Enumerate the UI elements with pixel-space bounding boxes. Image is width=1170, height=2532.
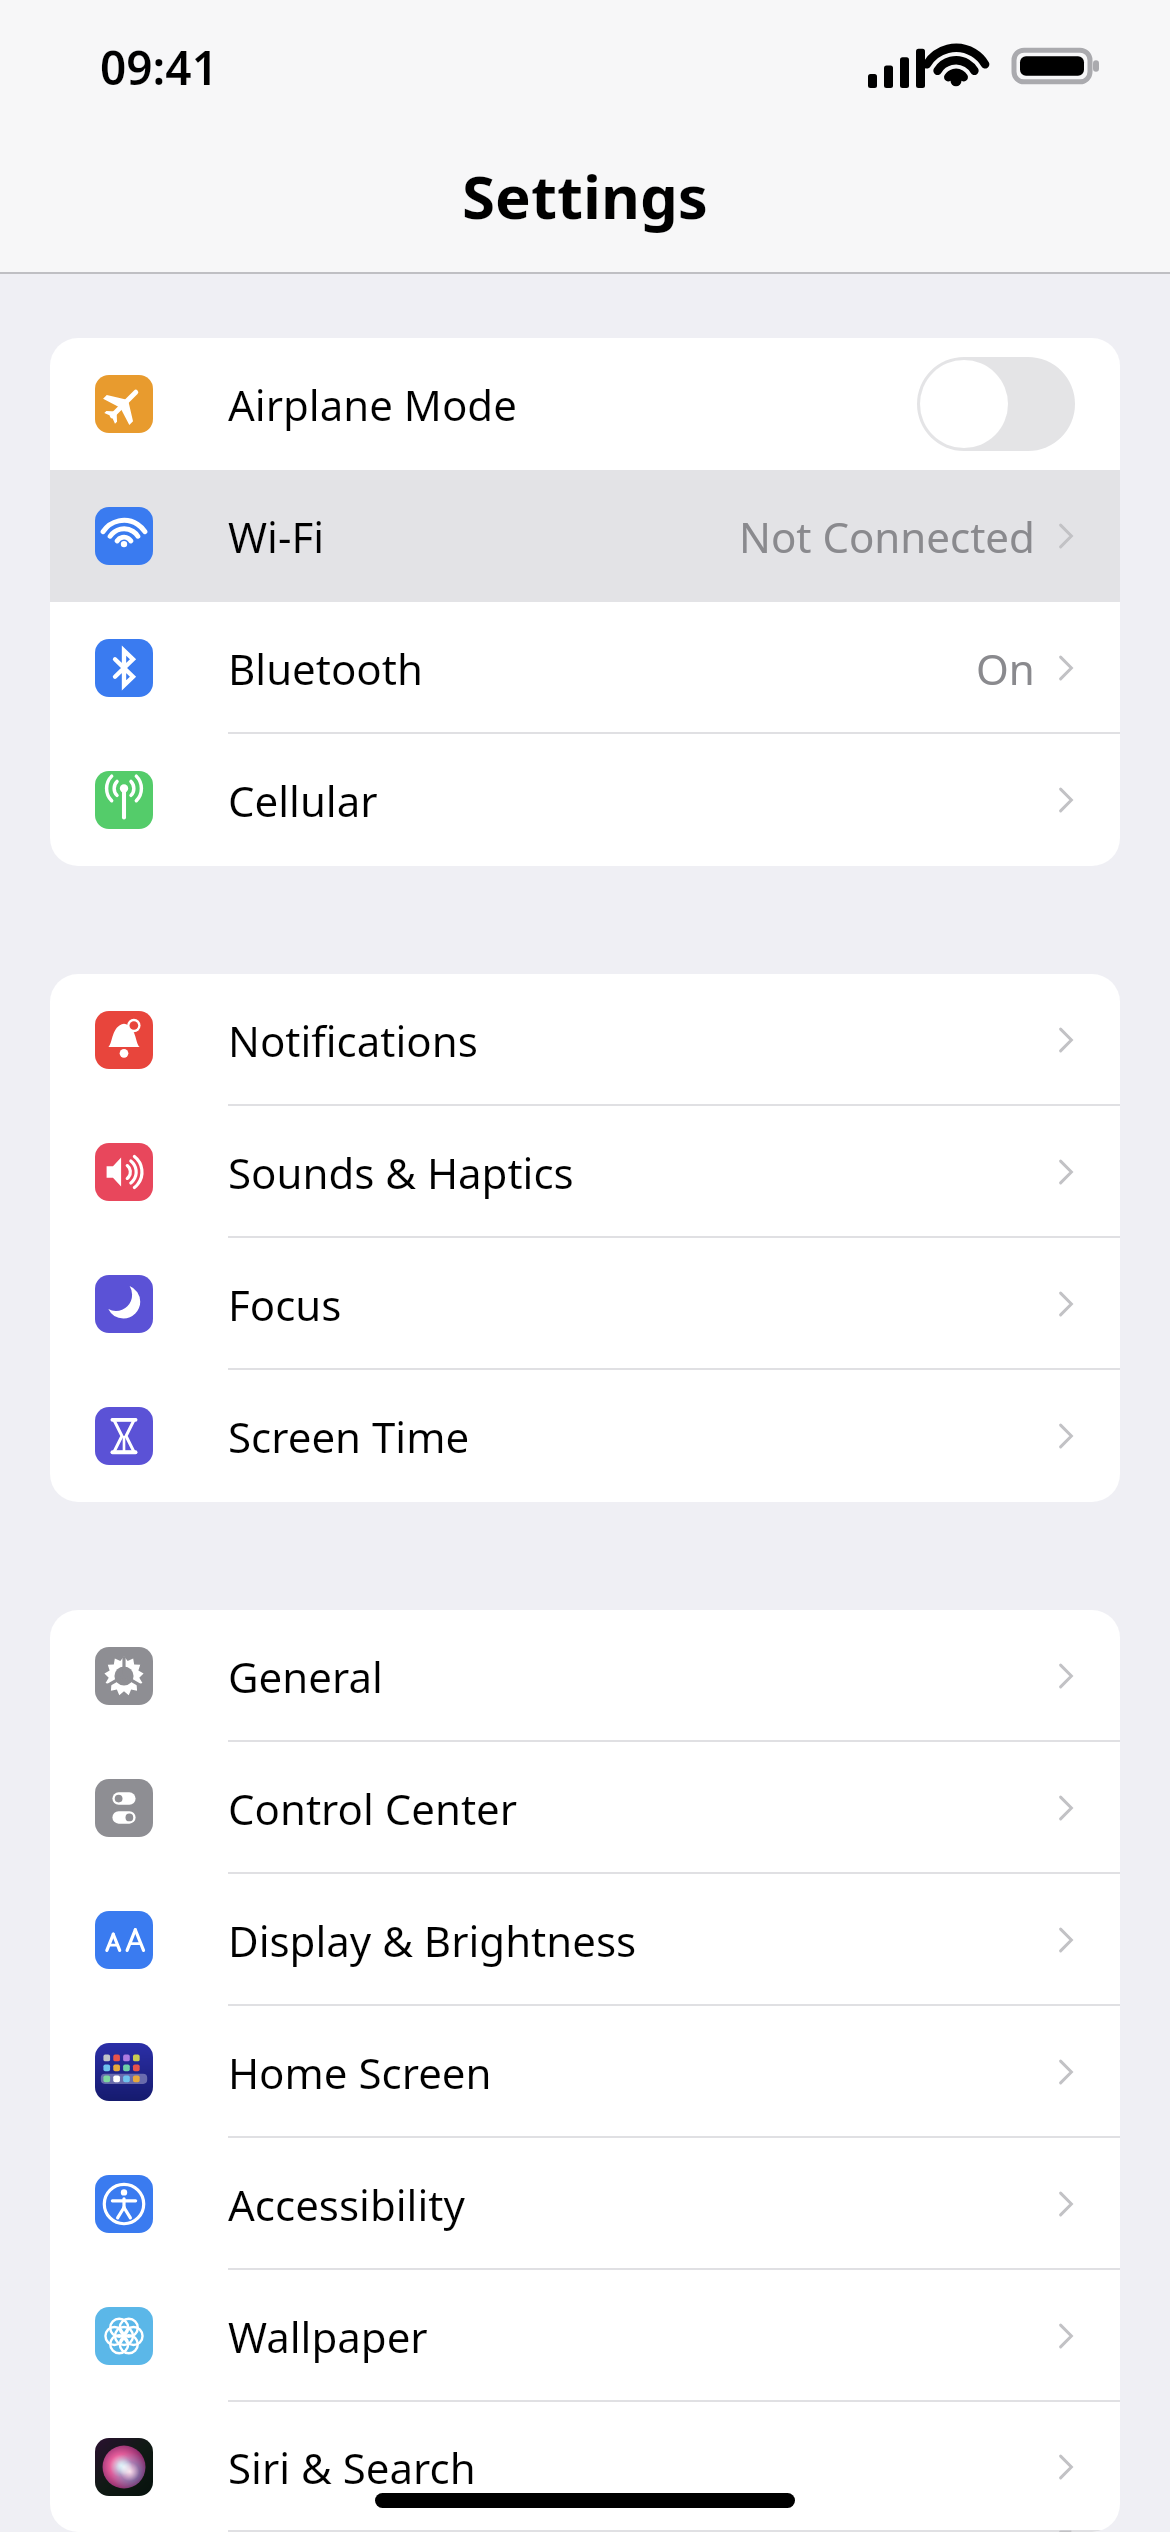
staticText: General <box>228 1648 383 1705</box>
staticText: 09:41 <box>100 36 218 99</box>
button[interactable]: Sounds & Haptics <box>50 1106 1120 1238</box>
button[interactable]: Bluetooth <box>50 602 1120 734</box>
staticText: Control Center <box>228 1780 518 1837</box>
staticText: Not Connected <box>739 508 1035 565</box>
staticText: Display & Brightness <box>228 1912 637 1969</box>
other: Open <box>1057 1024 1075 1056</box>
other: Open <box>1057 2188 1075 2220</box>
staticText: On <box>976 640 1035 697</box>
button[interactable]: Cellular <box>50 734 1120 866</box>
other: Open <box>1057 1792 1075 1824</box>
other: Open <box>1057 784 1075 816</box>
other: Open <box>1057 1660 1075 1692</box>
staticText: Notifications <box>228 1012 478 1069</box>
other: Open <box>1057 2451 1075 2483</box>
other: Open <box>1057 1156 1075 1188</box>
staticText: Settings <box>462 155 708 237</box>
other: Open <box>1057 2320 1075 2352</box>
staticText: Cellular <box>228 772 378 829</box>
button[interactable]: Wi-Fi <box>50 470 1120 602</box>
staticText: Bluetooth <box>228 640 423 697</box>
other: Open <box>1057 1924 1075 1956</box>
staticText: Siri & Search <box>228 2439 476 2496</box>
other: Open <box>1057 520 1075 552</box>
staticText: Wi-Fi <box>228 508 325 565</box>
button[interactable]: Siri & Search <box>50 2402 1120 2532</box>
button[interactable]: Wallpaper <box>50 2270 1120 2402</box>
button[interactable]: General <box>50 1610 1120 1742</box>
button[interactable]: Home Screen <box>50 2006 1120 2138</box>
button[interactable]: Focus <box>50 1238 1120 1370</box>
button[interactable]: Airplane Mode toggle, off <box>917 357 1075 451</box>
button[interactable]: Control Center <box>50 1742 1120 1874</box>
staticText: Wallpaper <box>228 2308 428 2365</box>
other: Open <box>1057 1288 1075 1320</box>
staticText: Airplane Mode <box>228 376 517 433</box>
button[interactable]: Display & Brightness <box>50 1874 1120 2006</box>
button[interactable]: Screen Time <box>50 1370 1120 1502</box>
staticText: Home Screen <box>228 2044 492 2101</box>
staticText: Accessibility <box>228 2176 465 2233</box>
other: Open <box>1057 1420 1075 1452</box>
other: Open <box>1057 2056 1075 2088</box>
staticText: Focus <box>228 1276 342 1333</box>
staticText: Screen Time <box>228 1408 470 1465</box>
button[interactable]: Accessibility <box>50 2138 1120 2270</box>
other: Open <box>1057 652 1075 684</box>
button[interactable]: Notifications <box>50 974 1120 1106</box>
button[interactable]: Airplane Mode <box>50 338 1120 470</box>
staticText: Sounds & Haptics <box>228 1144 574 1201</box>
